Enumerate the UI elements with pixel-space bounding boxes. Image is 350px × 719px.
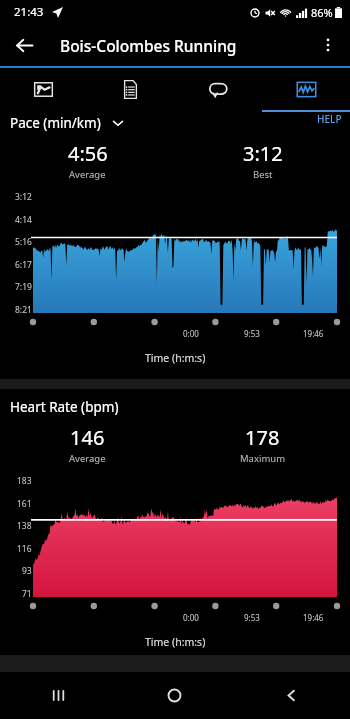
staticText: 5:16 bbox=[15, 236, 32, 248]
staticText: 161 bbox=[17, 498, 32, 510]
staticText: 4:14 bbox=[15, 214, 32, 226]
staticText: 9:53 bbox=[244, 328, 260, 339]
staticText: Average bbox=[69, 168, 106, 181]
staticText: 19:46 bbox=[303, 328, 324, 339]
staticText: Heart Rate (bpm) bbox=[10, 398, 119, 416]
staticText: 71 bbox=[22, 588, 32, 600]
staticText: 8:21 bbox=[15, 304, 32, 316]
button[interactable]: Home bbox=[116, 672, 233, 719]
button[interactable]: Details bbox=[87, 68, 174, 110]
staticText: 178 bbox=[245, 424, 280, 451]
staticText: 6:17 bbox=[15, 259, 32, 271]
staticText: 3:12 bbox=[243, 140, 283, 167]
staticText: 7:19 bbox=[15, 281, 32, 293]
staticText: 93 bbox=[22, 565, 32, 577]
staticText: 4:56 bbox=[68, 140, 108, 167]
staticText: 138 bbox=[17, 520, 32, 532]
staticText: HELP bbox=[317, 112, 342, 126]
button[interactable]: Recent apps bbox=[0, 672, 116, 719]
staticText: 21:43 bbox=[14, 4, 44, 20]
button[interactable]: Back bbox=[6, 27, 42, 63]
staticText: 183 bbox=[17, 475, 32, 487]
staticText: 0:00 bbox=[183, 612, 199, 623]
button[interactable]: Map bbox=[0, 68, 87, 110]
staticText: 19:46 bbox=[303, 612, 324, 623]
button[interactable]: Back bbox=[233, 672, 350, 719]
button[interactable]: More options bbox=[310, 27, 346, 63]
button[interactable]: Pace (min/km) bbox=[10, 114, 350, 132]
staticText: Time (h:m:s) bbox=[145, 351, 206, 365]
button[interactable]: Laps bbox=[174, 68, 262, 110]
staticText: 0:00 bbox=[183, 328, 199, 339]
button[interactable]: HELP bbox=[317, 112, 342, 126]
staticText: 3:12 bbox=[15, 191, 32, 203]
staticText: Time (h:m:s) bbox=[145, 635, 206, 649]
staticText: 86% bbox=[311, 5, 333, 20]
button[interactable]: Graphs bbox=[262, 68, 350, 110]
staticText: 116 bbox=[17, 543, 32, 555]
staticText: Pace (min/km) bbox=[10, 114, 101, 132]
staticText: 9:53 bbox=[244, 612, 260, 623]
staticText: Best bbox=[253, 168, 273, 181]
staticText: 146 bbox=[70, 424, 105, 451]
staticText: Maximum bbox=[240, 452, 286, 465]
staticText: Bois-Colombes Running bbox=[60, 35, 237, 56]
staticText: Average bbox=[69, 452, 106, 465]
